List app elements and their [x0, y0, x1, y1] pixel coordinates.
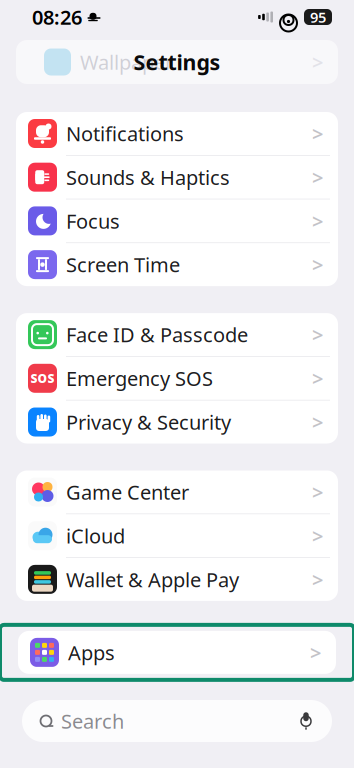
button[interactable]: Screen Time	[16, 243, 338, 286]
staticText: Focus	[66, 208, 120, 234]
button[interactable]: Privacy & Security	[16, 400, 338, 443]
staticText: >	[312, 49, 323, 75]
staticText: >	[312, 164, 323, 190]
button[interactable]: Wallet & Apple Pay	[16, 558, 338, 601]
staticText: Emergency SOS	[66, 365, 213, 392]
staticText: >	[312, 321, 323, 348]
button[interactable]: Focus	[16, 199, 338, 243]
staticText: >	[312, 251, 323, 278]
staticText: >	[312, 365, 323, 392]
staticText: >	[310, 639, 321, 666]
staticText: Wallpaper	[80, 49, 173, 75]
staticText: iCloud	[66, 522, 125, 549]
staticText: >	[312, 566, 323, 593]
staticText: Game Center	[66, 479, 189, 505]
staticText: SOS	[30, 370, 54, 386]
staticText: Face ID & Passcode	[66, 321, 248, 348]
button[interactable]: Face ID & Passcode	[16, 313, 338, 357]
button[interactable]: Notifications	[16, 112, 338, 156]
staticText: Screen Time	[66, 251, 180, 278]
staticText: 08:26	[32, 4, 82, 30]
staticText: Search	[61, 708, 124, 734]
staticText: >	[312, 479, 323, 505]
staticText: 95	[310, 7, 326, 27]
button[interactable]: Apps	[18, 631, 336, 674]
staticText: Privacy & Security	[66, 409, 231, 435]
staticText: >	[312, 120, 323, 147]
button[interactable]: Search	[22, 700, 332, 742]
button[interactable]: Game Center	[16, 470, 338, 514]
staticText: Apps	[68, 639, 115, 666]
staticText: >	[312, 409, 323, 435]
staticText: Settings	[133, 48, 220, 76]
staticText: Notifications	[66, 120, 184, 147]
staticText: Wallet & Apple Pay	[66, 566, 239, 593]
staticText: Sounds & Haptics	[66, 164, 230, 190]
button[interactable]: Sounds & Haptics	[16, 156, 338, 199]
button[interactable]: SOS	[16, 357, 338, 400]
staticText: >	[312, 208, 323, 234]
button[interactable]: iCloud	[16, 514, 338, 558]
staticText: >	[312, 522, 323, 549]
